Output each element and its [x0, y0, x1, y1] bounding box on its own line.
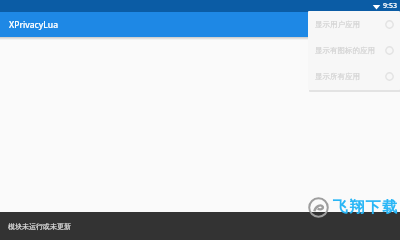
- button[interactable]: 显示所有应用: [308, 63, 400, 89]
- other: 显示所有应用: [385, 72, 394, 81]
- other: 显示用户应用: [385, 20, 394, 29]
- staticText: 显示所有应用: [315, 72, 385, 81]
- staticText: XPrivacyLua: [9, 19, 59, 31]
- button[interactable]: XPrivacyLua: [0, 12, 160, 37]
- button[interactable]: 显示用户应用: [308, 11, 400, 37]
- button[interactable]: 显示有图标的应用: [308, 37, 400, 63]
- staticText: 显示有图标的应用: [315, 46, 385, 55]
- other: 显示有图标的应用: [385, 46, 394, 55]
- staticText: 显示用户应用: [315, 20, 385, 29]
- staticText: 9:53: [383, 1, 397, 11]
- staticText: 飞翔下载: [332, 198, 398, 217]
- staticText: 模块未运行或未更新: [8, 222, 71, 231]
